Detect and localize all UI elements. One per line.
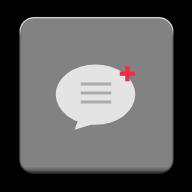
button[interactable]: New message bbox=[0, 0, 192, 192]
